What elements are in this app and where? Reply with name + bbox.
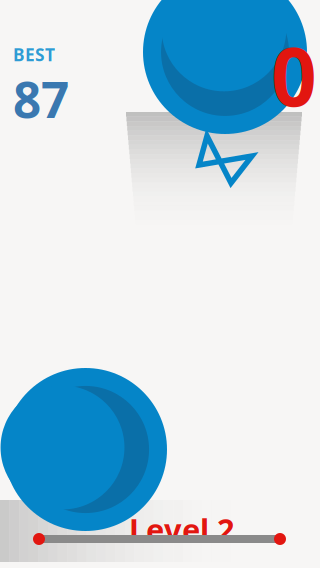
staticText: 87 (13, 66, 69, 131)
staticText: BEST (13, 43, 55, 66)
staticText: Level 2 (129, 509, 235, 550)
staticText: 0 (271, 22, 317, 128)
